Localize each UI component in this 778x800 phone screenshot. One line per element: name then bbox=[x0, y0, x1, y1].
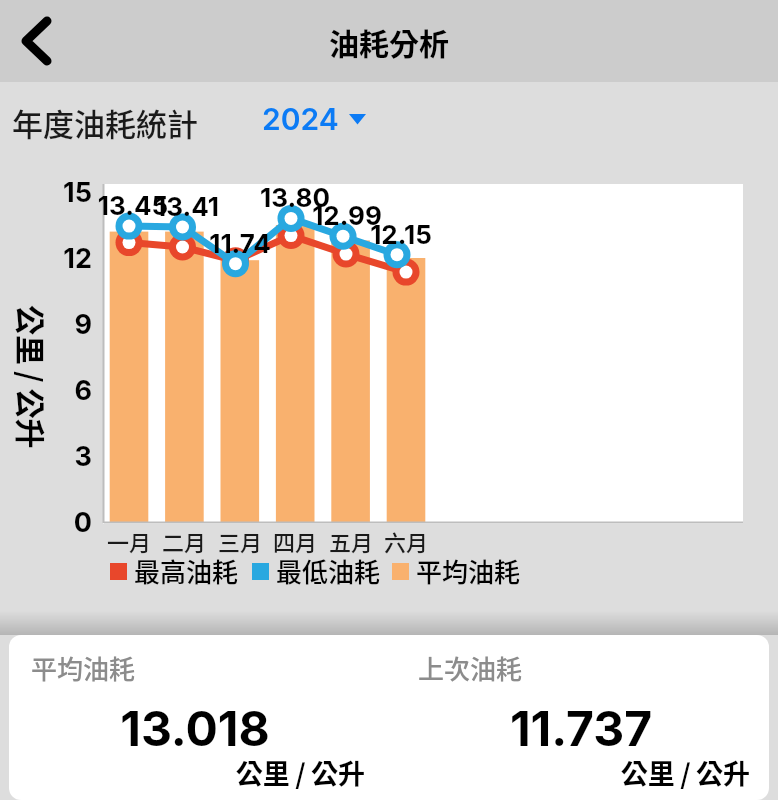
staticText: 平均油耗 bbox=[31, 649, 136, 687]
staticText: 12.99 bbox=[297, 200, 397, 231]
staticText: 6 bbox=[40, 374, 92, 407]
staticText: 13.41 bbox=[137, 191, 237, 222]
staticText: 二月 bbox=[144, 525, 224, 557]
staticText: 油耗分析 bbox=[329, 20, 449, 63]
staticText: 13.80 bbox=[245, 182, 345, 213]
staticText: 最低油耗 bbox=[276, 552, 416, 590]
staticText: 四月 bbox=[255, 525, 335, 557]
staticText: 公里 / 公升 bbox=[31, 753, 365, 792]
staticText: 年度油耗統計 bbox=[12, 100, 252, 145]
staticText: 3 bbox=[40, 440, 92, 473]
staticText: 公里 / 公升 bbox=[418, 753, 750, 792]
staticText: 一月 bbox=[89, 525, 169, 557]
staticText: 15 bbox=[40, 176, 92, 209]
staticText: 上次油耗 bbox=[418, 649, 523, 687]
staticText: 三月 bbox=[200, 525, 280, 557]
staticText: 公里 / 公升 bbox=[14, 305, 54, 449]
staticText: 11.74 bbox=[190, 228, 290, 259]
staticText: 13.018 bbox=[28, 699, 362, 757]
staticText: 六月 bbox=[366, 525, 446, 557]
staticText: 12.15 bbox=[351, 219, 451, 250]
staticText: 五月 bbox=[311, 525, 391, 557]
staticText: 最高油耗 bbox=[134, 552, 274, 590]
staticText: 0 bbox=[40, 506, 92, 539]
button[interactable]: 2024 bbox=[250, 94, 380, 144]
staticText: 13.45 bbox=[83, 190, 183, 221]
staticText: 12 bbox=[40, 242, 92, 275]
staticText: 平均油耗 bbox=[416, 552, 556, 590]
staticText: 9 bbox=[40, 308, 92, 341]
staticText: 2024 bbox=[262, 101, 339, 137]
button[interactable] bbox=[6, 9, 66, 73]
staticText: 11.737 bbox=[415, 699, 747, 757]
